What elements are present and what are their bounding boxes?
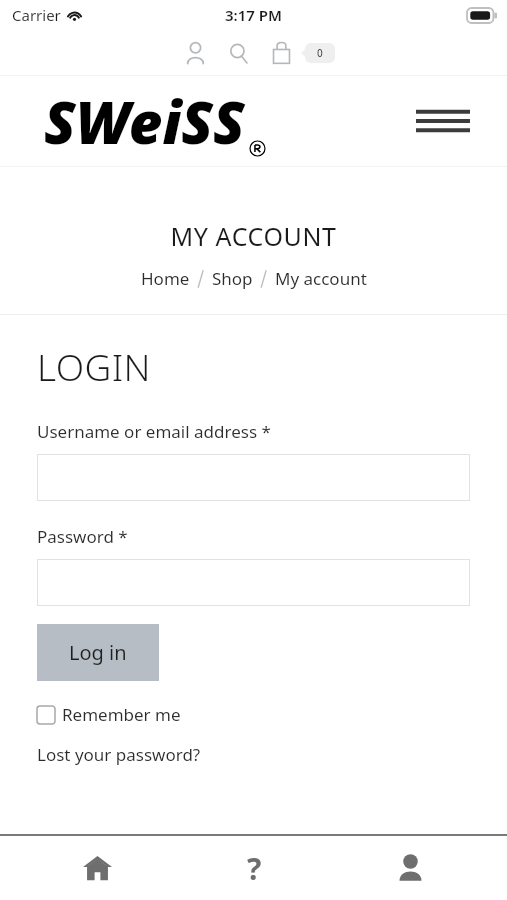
button[interactable]: Cart	[261, 33, 301, 73]
button[interactable]: Account	[350, 836, 470, 900]
staticText: Carrier	[12, 5, 61, 25]
staticText: 0	[317, 46, 323, 60]
staticText: SWeiSS	[44, 82, 245, 161]
staticText: Username or email address *	[37, 420, 271, 443]
button[interactable]: Sweiss home	[44, 82, 268, 161]
button[interactable]: Search	[217, 33, 261, 73]
staticText: ?	[247, 848, 262, 889]
button[interactable]	[37, 454, 470, 501]
button[interactable]: Lost your password?	[37, 743, 201, 766]
staticText: LOGIN	[37, 341, 151, 391]
button[interactable]: Home	[141, 267, 190, 290]
staticText: Shop	[212, 267, 253, 290]
staticText: Password *	[37, 525, 128, 548]
button[interactable]: Remember me	[37, 703, 181, 726]
staticText: Home	[141, 267, 190, 290]
button[interactable]	[37, 559, 470, 606]
button[interactable]: Home	[37, 836, 157, 900]
staticText: My account	[275, 267, 367, 290]
staticText: Log in	[69, 639, 127, 666]
button[interactable]: Menu	[415, 103, 471, 139]
button[interactable]: Shop	[212, 267, 253, 290]
staticText: 3:17 PM	[225, 5, 282, 25]
button[interactable]: Help	[194, 836, 314, 900]
staticText: Lost your password?	[37, 743, 201, 766]
staticText: MY ACCOUNT	[170, 219, 337, 253]
button[interactable]: 0	[301, 43, 335, 63]
button[interactable]: Log in	[37, 624, 159, 681]
staticText: Remember me	[62, 703, 181, 726]
button[interactable]: Account	[173, 33, 217, 73]
